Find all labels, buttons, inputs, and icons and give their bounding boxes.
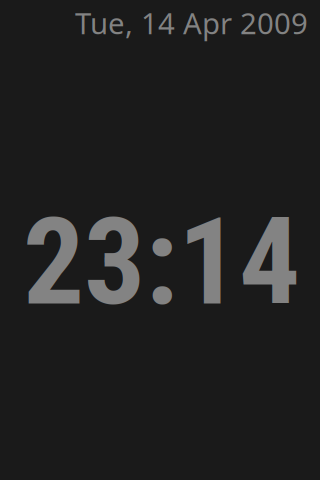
staticText: 23:14 [23, 191, 300, 333]
button[interactable]: 23:14 [23, 191, 300, 333]
staticText: Tue, 14 Apr 2009 [75, 3, 308, 43]
button[interactable]: Tue, 14 Apr 2009 [75, 3, 308, 43]
